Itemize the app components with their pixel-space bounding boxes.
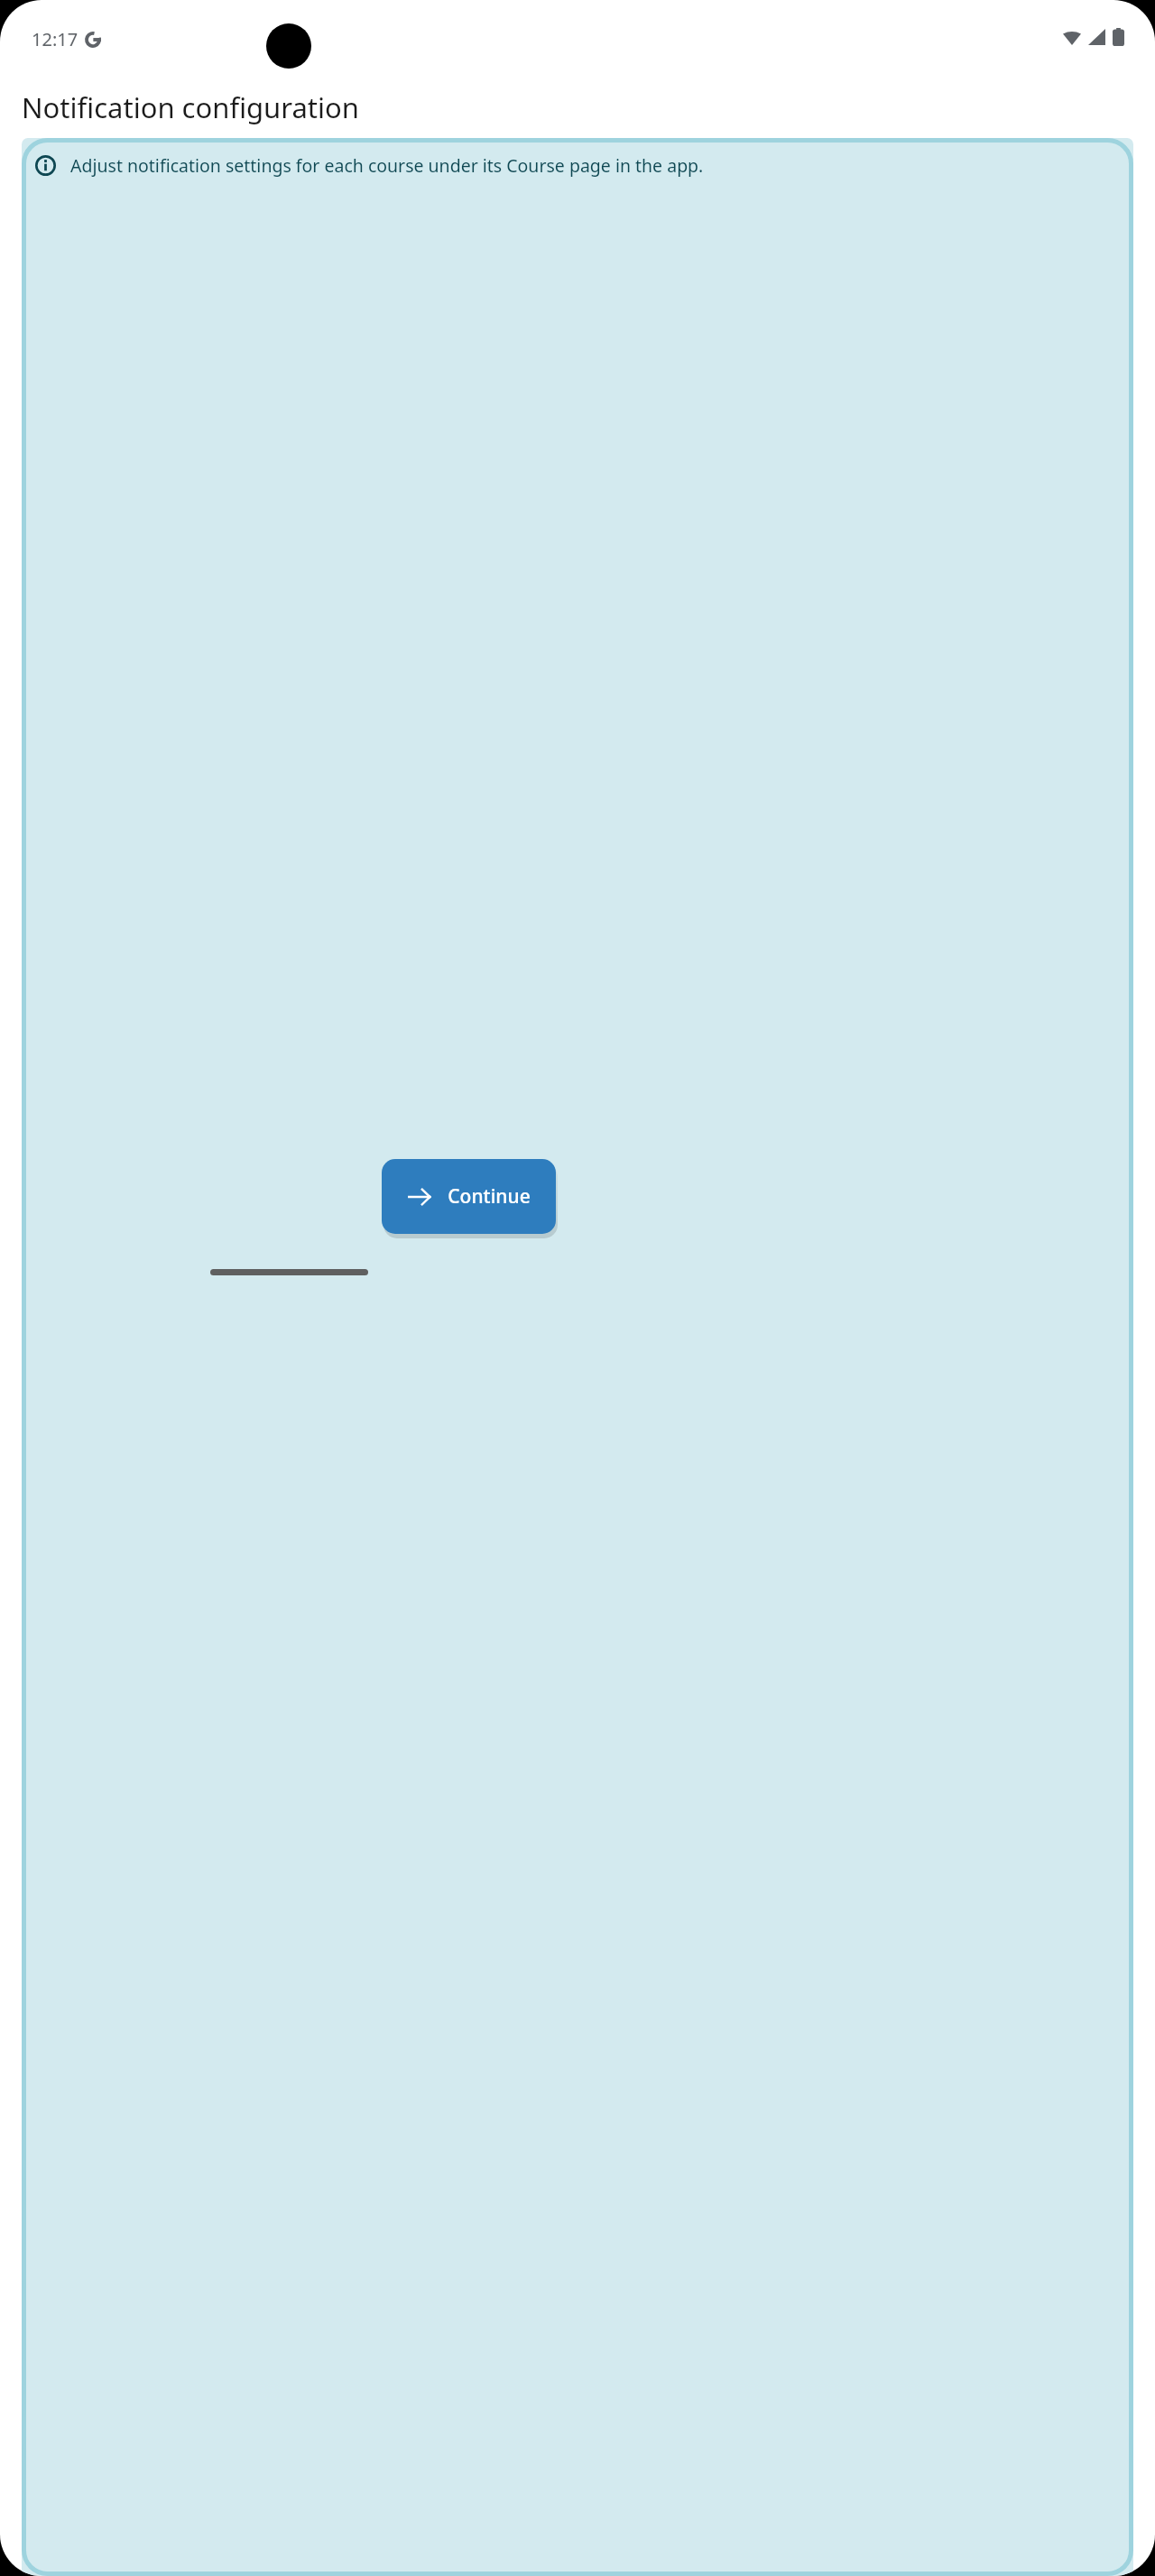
staticText: Adjust notification settings for each co…	[70, 153, 704, 178]
button[interactable]: Adjust notification settings for each co…	[22, 138, 1133, 2576]
button[interactable]: Continue	[382, 1159, 556, 1234]
staticText: 12:17	[32, 27, 79, 51]
staticText: Notification configuration	[22, 88, 359, 126]
staticText: Continue	[448, 1183, 531, 1210]
